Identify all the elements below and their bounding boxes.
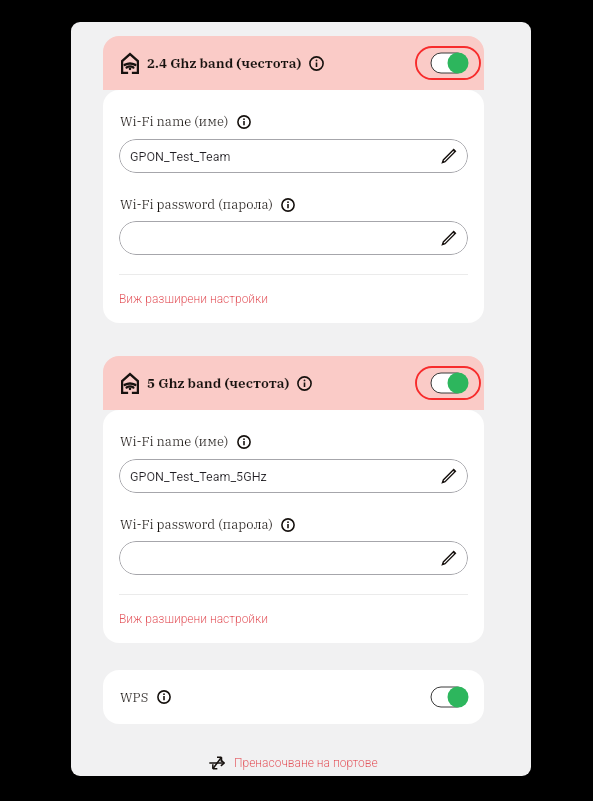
button[interactable]: Edit xyxy=(441,148,457,164)
staticText: Wi-Fi password (парола) xyxy=(120,516,273,533)
button[interactable]: Виж разширени настройки xyxy=(119,292,269,306)
staticText: Виж разширени настройки xyxy=(119,612,269,626)
button[interactable]: Edit xyxy=(441,468,457,484)
button[interactable]: 2.4 Ghz band (честота) xyxy=(103,36,484,90)
staticText: Пренасочване на портове xyxy=(234,756,378,770)
staticText: Виж разширени настройки xyxy=(119,292,269,306)
button[interactable]: GPON_Test_Team xyxy=(119,139,468,173)
staticText: GPON_Test_Team xyxy=(130,149,231,164)
button[interactable]: Toggle xyxy=(416,680,480,714)
button[interactable]: Toggle xyxy=(416,46,480,80)
staticText: Wi-Fi password (парола) xyxy=(120,196,273,213)
button[interactable]: Port forwarding xyxy=(205,751,382,775)
button[interactable]: Edit xyxy=(119,541,468,575)
button[interactable]: Edit xyxy=(441,230,457,246)
staticText: 2.4 Ghz band (честота) xyxy=(147,54,302,72)
button[interactable]: WPS xyxy=(103,670,484,724)
button[interactable]: Виж разширени настройки xyxy=(119,612,269,626)
button[interactable]: Edit xyxy=(441,550,457,566)
staticText: Wi-Fi name (име) xyxy=(120,113,229,130)
other: Port forwarding xyxy=(209,755,225,771)
button[interactable]: Toggle xyxy=(416,366,480,400)
button[interactable]: Edit xyxy=(119,221,468,255)
staticText: Wi-Fi name (име) xyxy=(120,433,229,450)
button[interactable]: GPON_Test_Team_5GHz xyxy=(119,459,468,493)
staticText: WPS xyxy=(120,689,149,706)
staticText: 5 Ghz band (честота) xyxy=(147,374,290,392)
button[interactable]: 5 Ghz band (честота) xyxy=(103,356,484,410)
staticText: GPON_Test_Team_5GHz xyxy=(130,469,267,484)
